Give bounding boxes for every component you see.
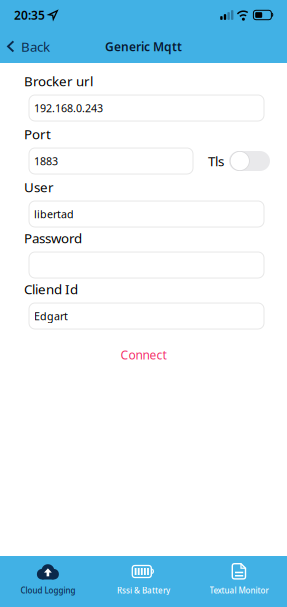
button[interactable]: Cloud Logging	[0, 556, 96, 607]
staticText: 1883	[34, 154, 58, 168]
button[interactable]: Rssi & Battery	[96, 556, 191, 607]
button[interactable]: Tls	[229, 151, 270, 171]
staticText: Textual Monitor	[210, 585, 269, 596]
staticText: Generic Mqtt	[105, 38, 182, 54]
staticText: 192.168.0.243	[34, 101, 103, 115]
button[interactable]: Text field	[29, 252, 264, 278]
button[interactable]: libertad	[29, 201, 264, 227]
staticText: Brocker url	[24, 72, 93, 90]
staticText: Connect	[120, 347, 166, 363]
staticText: Cloud Logging	[20, 585, 75, 596]
staticText: 20:35	[14, 7, 45, 23]
staticText: Rssi & Battery	[117, 585, 170, 596]
staticText: Back	[21, 38, 50, 55]
staticText: Tls	[208, 152, 224, 170]
button[interactable]: Back	[0, 30, 50, 63]
staticText: Password	[24, 229, 82, 247]
staticText: Edgart	[34, 309, 68, 323]
staticText: Port	[24, 125, 51, 143]
staticText: User	[24, 178, 54, 196]
button[interactable]: Edgart	[29, 303, 264, 329]
staticText: libertad	[34, 207, 74, 221]
staticText: Cliend Id	[24, 280, 78, 298]
button[interactable]: Textual Monitor	[191, 556, 287, 607]
button[interactable]: 1883	[29, 148, 193, 174]
button[interactable]: Connect	[120, 347, 166, 363]
button[interactable]: 192.168.0.243	[29, 95, 264, 121]
